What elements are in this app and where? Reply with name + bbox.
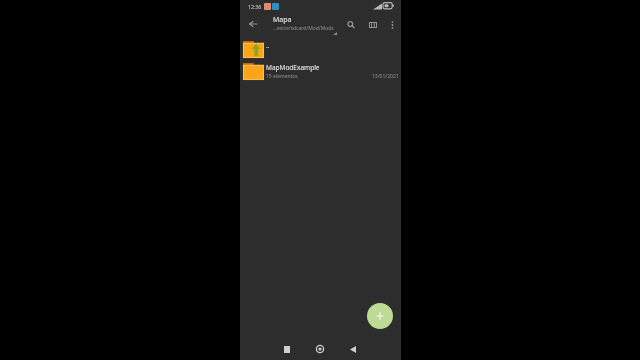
staticText: ..	[266, 41, 270, 50]
staticText: Mapa	[273, 15, 292, 25]
button[interactable]: ..	[240, 38, 401, 60]
staticText: 13/01/2021	[372, 73, 399, 80]
staticText: MapModExample	[266, 63, 320, 72]
button[interactable]: More options	[384, 12, 401, 38]
button[interactable]: Search	[340, 12, 362, 38]
staticText: 12:36	[248, 3, 262, 10]
button[interactable]: Add	[367, 303, 393, 329]
button[interactable]: Back	[347, 341, 359, 357]
staticText: ...evice/sdcard/Mod/Mods	[273, 25, 334, 32]
button[interactable]: Change view	[362, 12, 384, 38]
button[interactable]: Back	[243, 12, 263, 36]
staticText: 15 elementos	[266, 73, 298, 80]
button[interactable]: Home	[314, 341, 326, 357]
button[interactable]: Recents	[281, 341, 293, 357]
button[interactable]: MapModExample	[240, 60, 401, 82]
